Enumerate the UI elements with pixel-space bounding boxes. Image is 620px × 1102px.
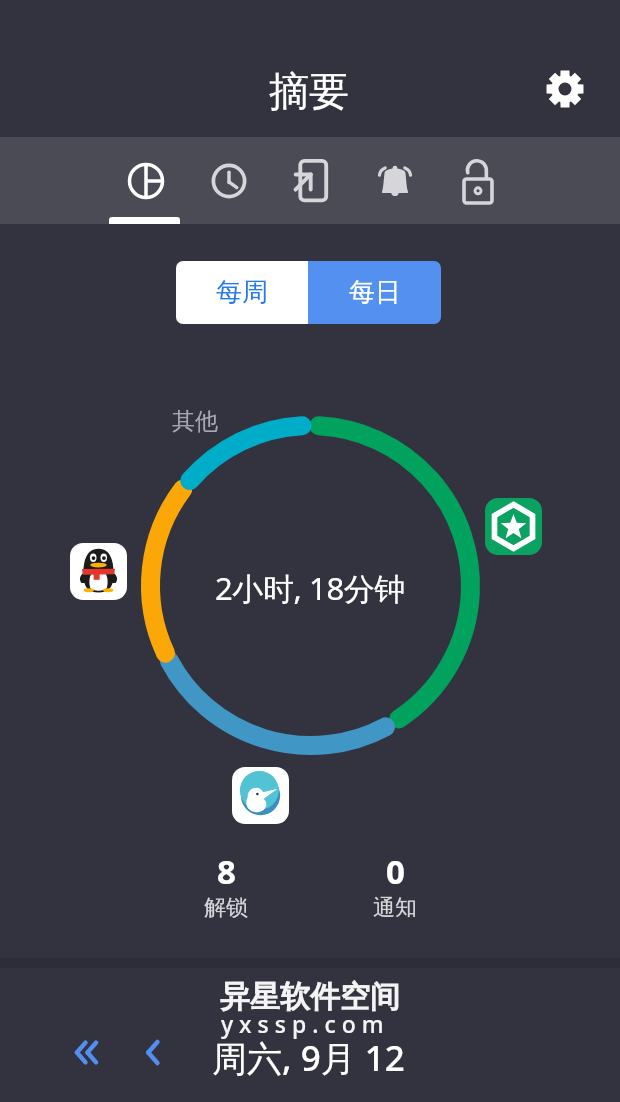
staticText: 摘要 <box>269 66 349 116</box>
staticText: y x s s p . c o m <box>221 1008 384 1039</box>
button[interactable]: Previous day <box>126 1026 178 1078</box>
button[interactable]: 每日 <box>308 261 441 324</box>
staticText: 0 <box>386 849 405 894</box>
staticText: 周六, 9月 12 <box>212 1034 405 1082</box>
staticText: 通知 <box>373 894 417 922</box>
button[interactable]: Settings <box>537 61 593 117</box>
button[interactable]: 8 <box>166 849 286 922</box>
button[interactable]: Launches <box>270 137 353 224</box>
button[interactable]: QQ <box>70 543 127 600</box>
staticText: 8 <box>217 849 236 894</box>
button[interactable]: 0 <box>335 849 455 922</box>
button[interactable]: Unlocks <box>436 137 519 224</box>
button[interactable]: Notifications <box>353 137 436 224</box>
staticText: 每日 <box>349 276 401 309</box>
button[interactable]: Kiwi Browser <box>232 767 289 824</box>
staticText: 2小时, 18分钟 <box>215 567 405 609</box>
button[interactable]: Summary <box>104 137 187 224</box>
button[interactable]: 每周 <box>176 261 308 324</box>
staticText: 其他 <box>172 407 218 436</box>
staticText: 每周 <box>216 276 268 309</box>
button[interactable]: Usage time <box>187 137 270 224</box>
button[interactable]: Previous week <box>60 1026 112 1078</box>
staticText: 解锁 <box>204 894 248 922</box>
staticText: 异星软件空间 <box>220 978 400 1016</box>
button[interactable]: App store <box>485 498 542 555</box>
